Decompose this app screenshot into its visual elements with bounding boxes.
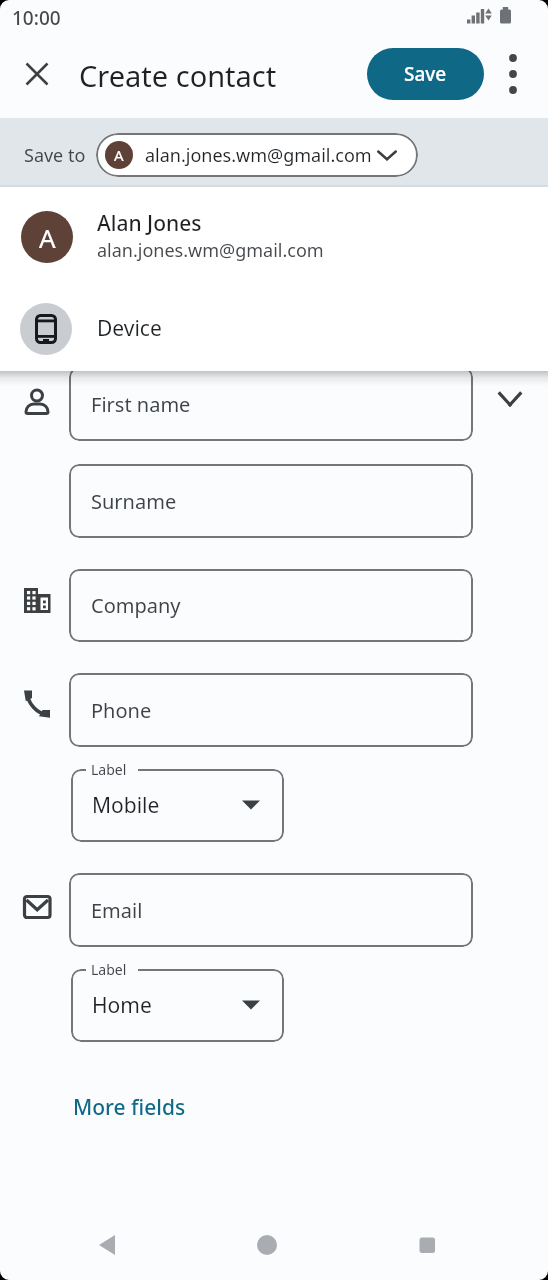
- button[interactable]: Home: [71, 969, 284, 1042]
- button[interactable]: Mobile: [71, 769, 284, 842]
- button[interactable]: [83, 1221, 131, 1269]
- button[interactable]: First name: [69, 367, 473, 441]
- staticText: Home: [92, 991, 152, 1020]
- staticText: Create contact: [79, 56, 277, 95]
- button[interactable]: Company: [69, 569, 473, 642]
- staticText: alan.jones.wm@gmail.com: [97, 238, 324, 262]
- staticText: Label: [91, 960, 127, 979]
- button[interactable]: [489, 378, 531, 420]
- staticText: Device: [97, 314, 162, 343]
- staticText: Save: [404, 61, 447, 87]
- staticText: Phone: [91, 697, 152, 724]
- staticText: alan.jones.wm@gmail.com: [145, 143, 372, 168]
- button[interactable]: [495, 56, 531, 92]
- staticText: More fields: [73, 1093, 186, 1122]
- button[interactable]: [16, 53, 58, 95]
- staticText: Email: [91, 897, 143, 924]
- button[interactable]: More fields: [64, 1085, 194, 1129]
- button[interactable]: Email: [69, 873, 473, 947]
- staticText: A: [39, 220, 56, 255]
- button[interactable]: A: [0, 196, 548, 276]
- button[interactable]: [403, 1221, 451, 1269]
- staticText: Save to: [24, 143, 86, 168]
- staticText: A: [114, 145, 124, 165]
- button[interactable]: A: [96, 133, 418, 177]
- staticText: Surname: [91, 488, 177, 515]
- staticText: 10:00: [12, 5, 61, 27]
- staticText: Alan Jones: [97, 209, 202, 235]
- button[interactable]: [243, 1221, 291, 1269]
- staticText: Company: [91, 592, 181, 619]
- button[interactable]: Device: [0, 290, 548, 366]
- staticText: Label: [91, 760, 127, 779]
- staticText: Mobile: [92, 791, 160, 820]
- button[interactable]: Save: [367, 48, 484, 100]
- button[interactable]: Surname: [69, 464, 473, 538]
- staticText: First name: [91, 391, 191, 418]
- button[interactable]: Phone: [69, 673, 473, 747]
